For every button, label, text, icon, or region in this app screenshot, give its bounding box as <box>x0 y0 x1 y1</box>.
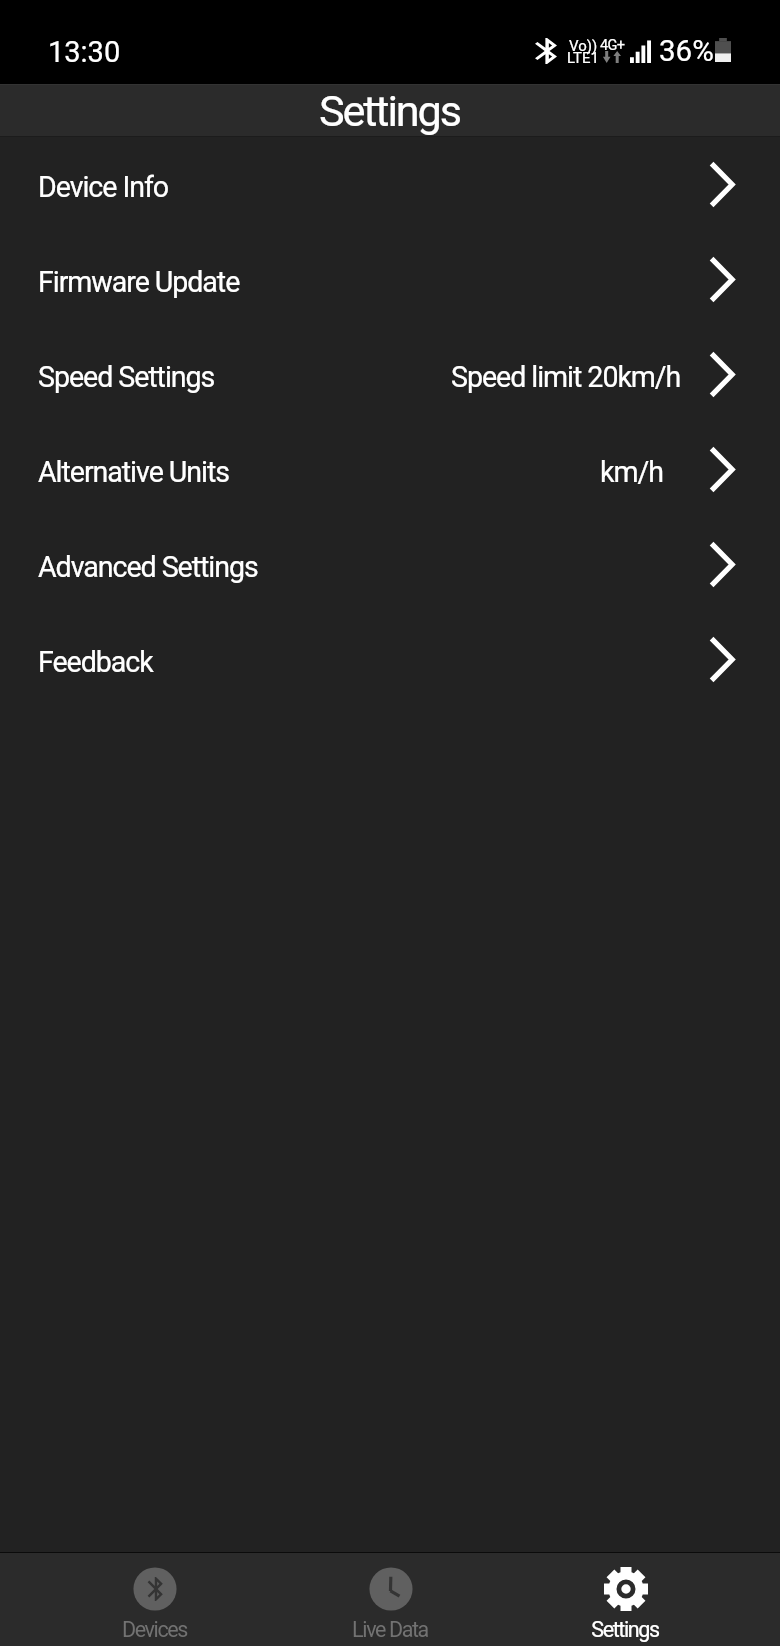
other: Settings <box>604 1567 648 1611</box>
staticText: 13:30 <box>48 35 121 69</box>
staticText: Advanced Settings <box>38 550 258 584</box>
staticText: km/h <box>600 455 663 489</box>
staticText: Feedback <box>38 645 153 679</box>
other: Live Data <box>369 1567 413 1611</box>
button[interactable]: Settings <box>508 1553 743 1646</box>
staticText: Vo)) <box>569 37 598 55</box>
staticText: LTE1 <box>567 49 599 67</box>
staticText: Alternative Units <box>38 455 229 489</box>
button[interactable]: Speed Settings <box>0 327 780 422</box>
button[interactable]: Feedback <box>0 612 780 707</box>
staticText: 4G+ <box>600 37 625 54</box>
staticText: Device Info <box>38 170 169 204</box>
staticText: 36% <box>659 34 714 69</box>
button[interactable]: Live Data <box>273 1553 508 1646</box>
button[interactable]: Firmware Update <box>0 232 780 327</box>
button[interactable]: Device Info <box>0 137 780 232</box>
staticText: Settings <box>591 1617 659 1642</box>
other: Devices <box>133 1567 177 1611</box>
button[interactable]: Alternative Units <box>0 422 780 517</box>
staticText: Devices <box>122 1617 187 1642</box>
button[interactable]: Advanced Settings <box>0 517 780 612</box>
staticText: Live Data <box>352 1617 428 1642</box>
staticText: Firmware Update <box>38 265 240 299</box>
staticText: Speed Settings <box>38 360 215 394</box>
staticText: Speed limit 20km/h <box>451 360 681 394</box>
staticText: Settings <box>319 86 460 137</box>
button[interactable]: Devices <box>37 1553 273 1646</box>
